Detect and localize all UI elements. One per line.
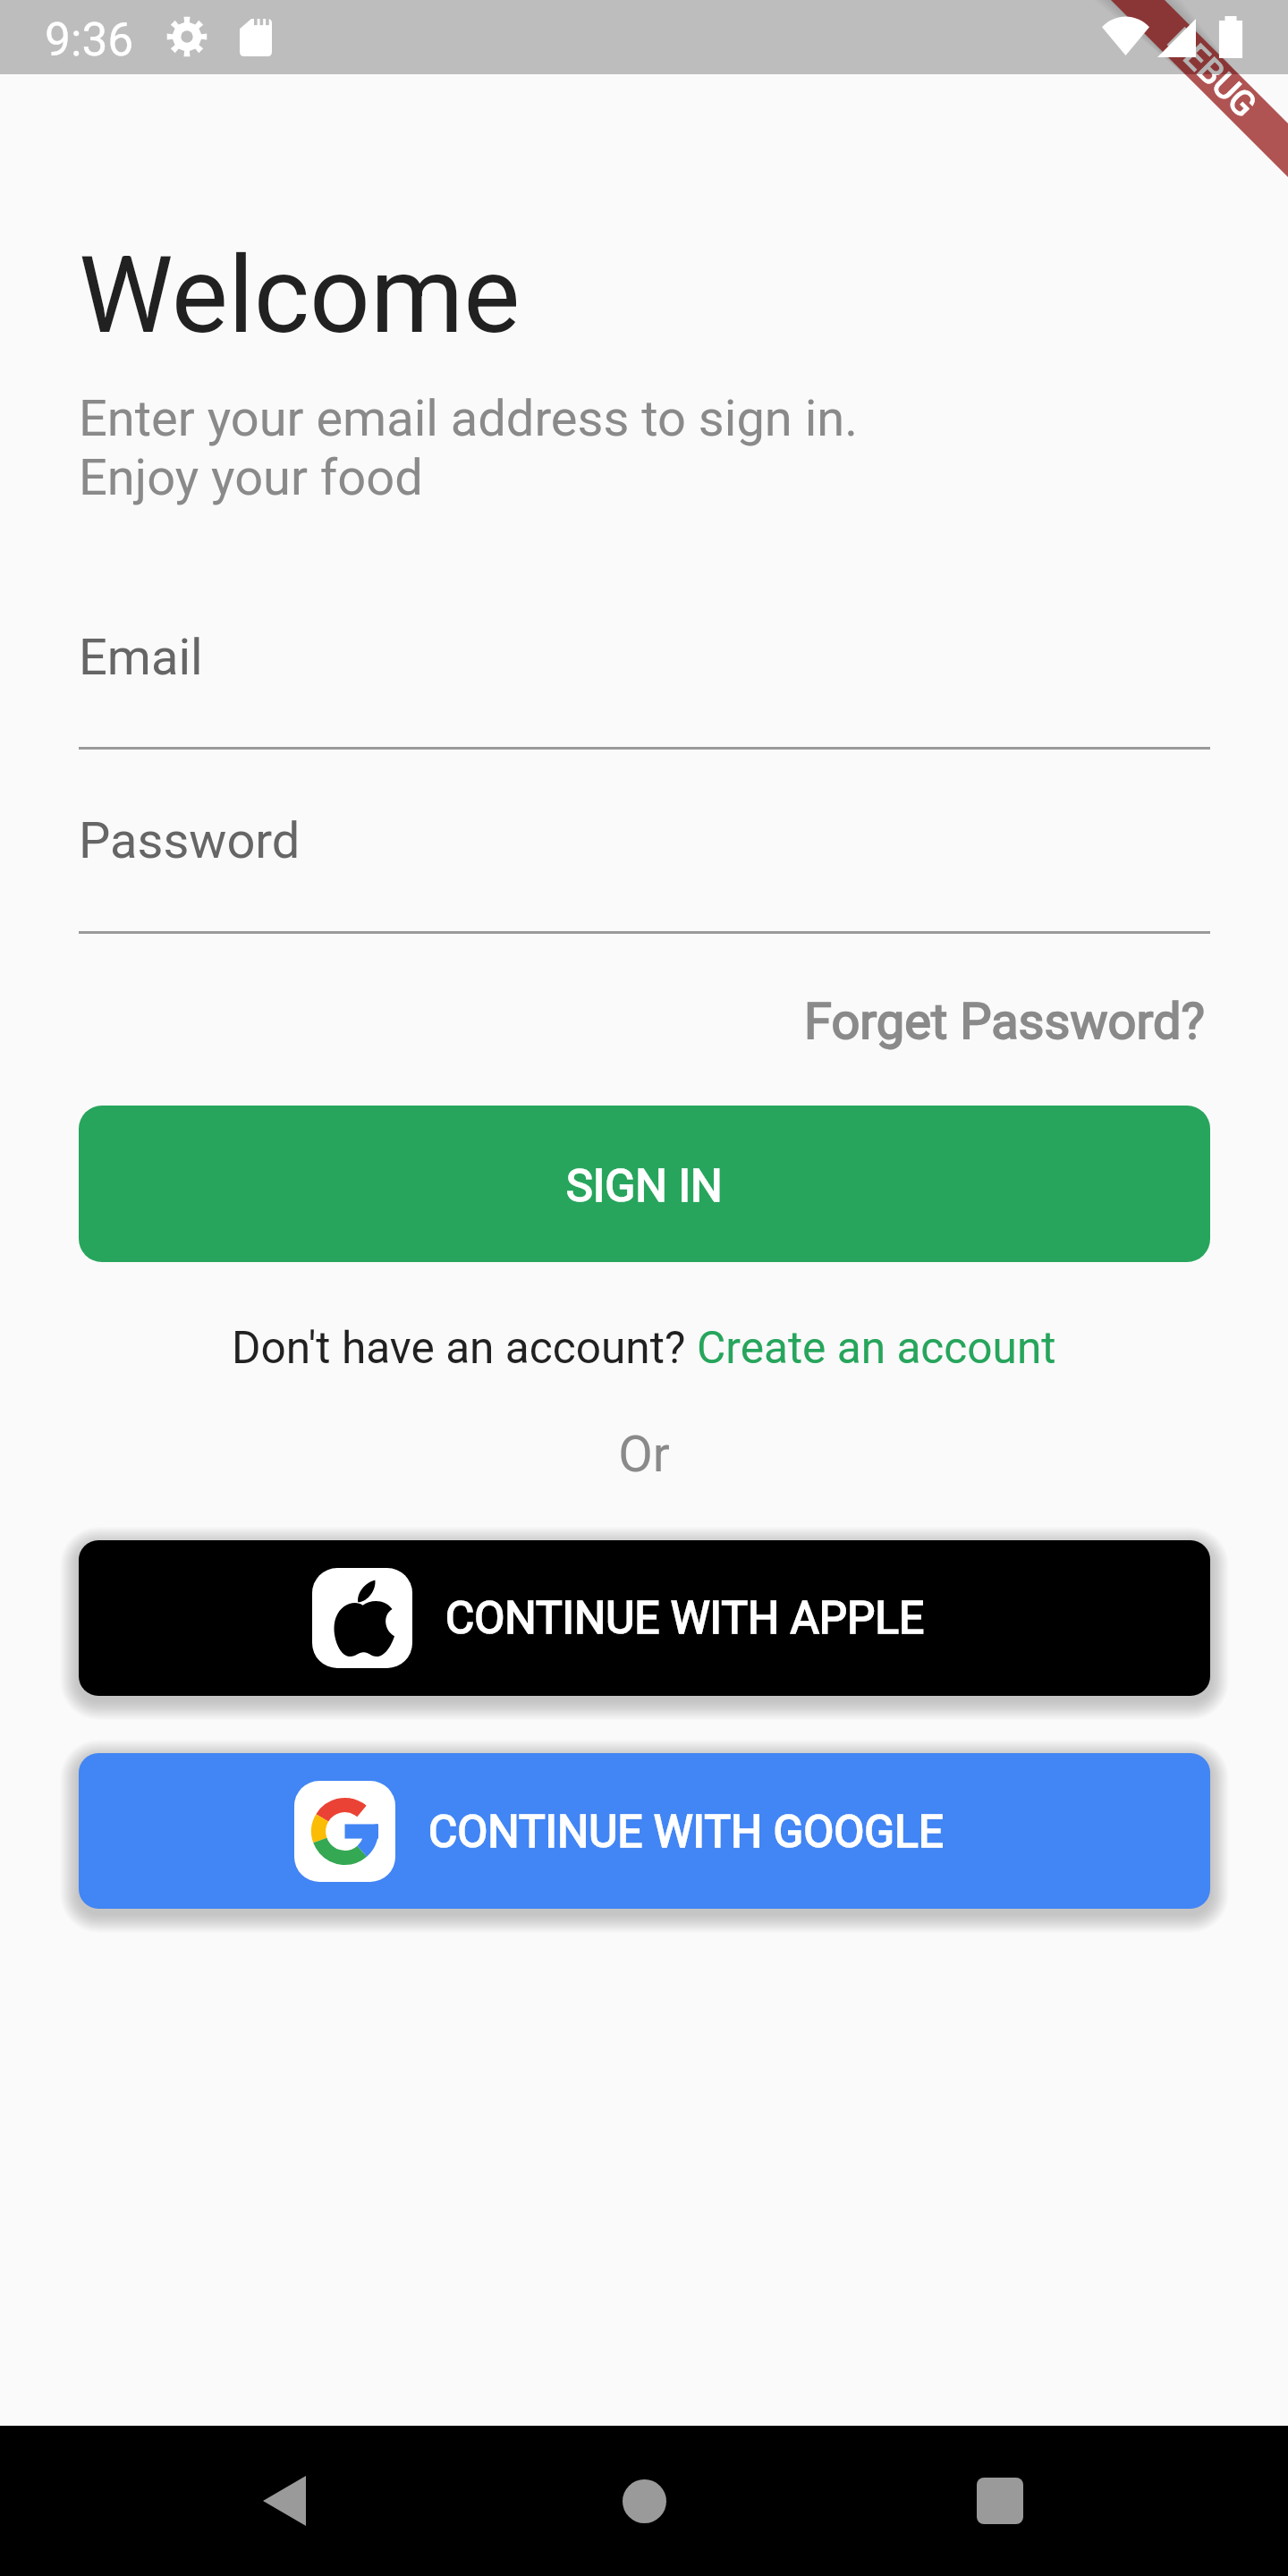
staticText: Or xyxy=(0,1425,1288,1484)
staticText: Enter your email address to sign in. Enj… xyxy=(79,389,858,507)
button[interactable]: Recents xyxy=(977,2478,1023,2524)
staticText: Welcome xyxy=(79,233,521,358)
staticText: DEBUG xyxy=(1159,74,1264,126)
staticText: Password xyxy=(79,811,301,870)
button[interactable]: Forget Password? xyxy=(79,992,1205,1051)
staticText: Don't have an account? xyxy=(232,1322,697,1374)
staticText: 9:36 xyxy=(45,13,134,66)
staticText: Forget Password? xyxy=(804,992,1205,1051)
button[interactable]: Home xyxy=(623,2479,666,2523)
staticText: SIGN IN xyxy=(566,1160,723,1213)
button[interactable]: CONTINUE WITH GOOGLE xyxy=(79,1753,1210,1909)
staticText: CONTINUE WITH APPLE xyxy=(445,1592,925,1644)
staticText: CONTINUE WITH GOOGLE xyxy=(428,1806,944,1858)
button[interactable]: SIGN IN xyxy=(79,1106,1210,1262)
staticText: DEBUG xyxy=(1159,21,1264,74)
button[interactable]: CONTINUE WITH APPLE xyxy=(79,1540,1210,1696)
staticText: Email xyxy=(79,628,203,687)
button[interactable]: Back xyxy=(263,2476,306,2526)
staticText: Create an account xyxy=(697,1322,1056,1374)
button[interactable]: Create an account xyxy=(697,1322,1056,1374)
